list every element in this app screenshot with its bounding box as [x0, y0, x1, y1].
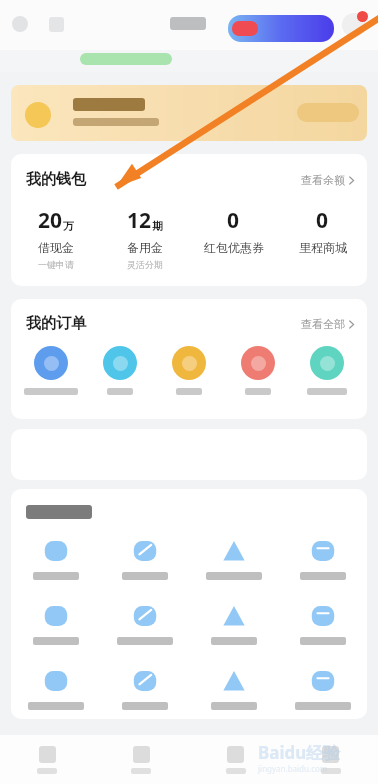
- button[interactable]: 查看全部: [301, 317, 355, 331]
- button[interactable]: Service 8: [278, 602, 367, 645]
- staticText: 我的钱包: [26, 170, 86, 189]
- button[interactable]: Order category 2: [85, 346, 154, 395]
- button[interactable]: Profile: [342, 13, 366, 37]
- button[interactable]: Service 3: [189, 537, 278, 580]
- staticText: 期: [152, 219, 163, 233]
- button[interactable]: Service 5: [11, 602, 100, 645]
- staticText: 0: [227, 206, 240, 235]
- staticText: 20: [38, 206, 63, 235]
- button[interactable]: 20: [11, 206, 100, 270]
- button[interactable]: Service 10: [100, 667, 189, 710]
- staticText: 查看余额: [301, 173, 345, 187]
- button[interactable]: Open: [297, 103, 359, 122]
- button[interactable]: Service 11: [189, 667, 278, 710]
- button[interactable]: Tab 2: [94, 746, 188, 774]
- staticText: 万: [63, 219, 74, 233]
- staticText: 借现金: [38, 240, 74, 255]
- staticText: 我的订单: [26, 314, 86, 333]
- button[interactable]: Order category 1: [17, 346, 85, 395]
- button[interactable]: Service 6: [100, 602, 189, 645]
- button[interactable]: Tab 1: [0, 746, 94, 774]
- button[interactable]: Menu: [12, 16, 28, 32]
- staticText: 灵活分期: [127, 259, 163, 270]
- button[interactable]: Order category 3: [154, 346, 223, 395]
- staticText: 一键申请: [38, 259, 74, 270]
- staticText: 备用金: [127, 240, 163, 255]
- staticText: jingyan.baidu.com: [258, 763, 328, 774]
- staticText: 红包优惠券: [204, 240, 264, 255]
- button[interactable]: 查看余额: [301, 173, 355, 187]
- button[interactable]: Service 9: [11, 667, 100, 710]
- button[interactable]: Tab 3: [188, 746, 283, 774]
- staticText: 查看全部: [301, 317, 345, 331]
- staticText: 里程商城: [299, 240, 347, 255]
- button[interactable]: Order category 4: [223, 346, 292, 395]
- button[interactable]: 12: [100, 206, 189, 270]
- button[interactable]: Service 7: [189, 602, 278, 645]
- button[interactable]: Open: [11, 85, 367, 141]
- button[interactable]: Promotion: [228, 15, 334, 42]
- staticText: 12: [127, 206, 152, 235]
- button[interactable]: Service 1: [11, 537, 100, 580]
- button[interactable]: Tab 4: [283, 746, 378, 774]
- button[interactable]: Service 2: [100, 537, 189, 580]
- button[interactable]: Service 12: [278, 667, 367, 710]
- button[interactable]: Service 4: [278, 537, 367, 580]
- button[interactable]: 0: [278, 206, 367, 255]
- staticText: Baidu经验: [258, 741, 341, 764]
- button[interactable]: Order category 5: [292, 346, 361, 395]
- staticText: 0: [316, 206, 329, 235]
- button[interactable]: 0: [189, 206, 278, 255]
- button[interactable]: Scan: [49, 17, 64, 32]
